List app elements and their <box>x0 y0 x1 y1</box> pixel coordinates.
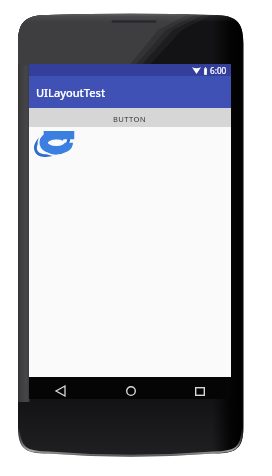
button[interactable]: Home <box>97 377 164 399</box>
button[interactable]: BUTTON <box>29 108 231 127</box>
staticText: BUTTON <box>113 114 147 124</box>
staticText: UILayoutTest <box>36 85 106 100</box>
staticText: 6:00 <box>210 65 227 76</box>
button[interactable]: Back <box>27 377 94 399</box>
button[interactable]: Recent apps <box>166 377 233 399</box>
